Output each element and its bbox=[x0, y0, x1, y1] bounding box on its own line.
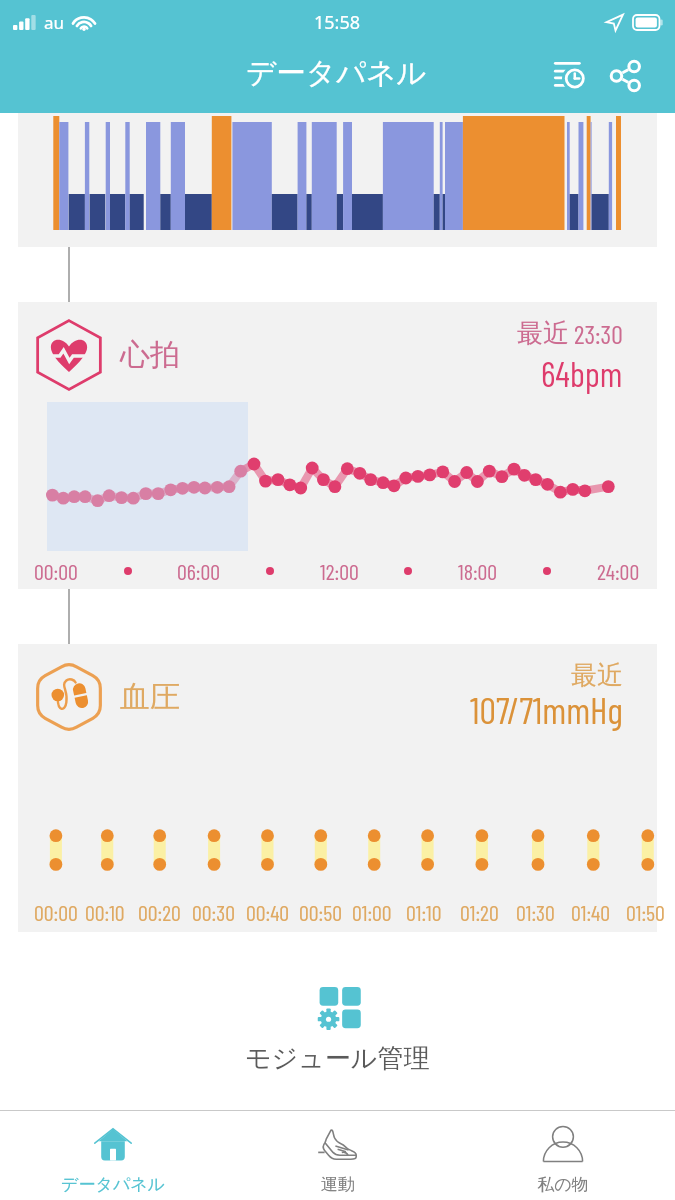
staticText: 01:50 bbox=[626, 899, 665, 925]
staticText: 18:00 bbox=[458, 558, 498, 584]
staticText: 15:58 bbox=[314, 10, 361, 35]
button[interactable] bbox=[18, 113, 657, 247]
staticText: 01:10 bbox=[406, 899, 442, 925]
staticText: 24:00 bbox=[597, 558, 640, 584]
button[interactable]: 運動 bbox=[225, 1111, 450, 1200]
button[interactable]: History bbox=[545, 49, 593, 97]
staticText: 01:20 bbox=[460, 899, 499, 925]
staticText: 運動 bbox=[321, 1174, 355, 1195]
staticText: 23:30 bbox=[574, 318, 623, 349]
staticText: 00:40 bbox=[246, 899, 290, 925]
staticText: 01:00 bbox=[352, 899, 392, 925]
staticText: 01:30 bbox=[516, 899, 555, 925]
button[interactable]: 心拍 bbox=[18, 302, 657, 589]
staticText: au bbox=[44, 11, 65, 34]
staticText: 06:00 bbox=[177, 558, 220, 584]
staticText: 00:10 bbox=[85, 899, 125, 925]
staticText: 12:00 bbox=[320, 558, 359, 584]
staticText: 00:30 bbox=[192, 899, 235, 925]
button[interactable]: データパネル bbox=[0, 1111, 225, 1200]
staticText: 64bpm bbox=[541, 352, 623, 394]
staticText: 血圧 bbox=[120, 678, 180, 716]
button[interactable]: Share bbox=[602, 52, 650, 100]
staticText: 00:20 bbox=[138, 899, 181, 925]
staticText: モジュール管理 bbox=[245, 1042, 430, 1075]
staticText: 最近 bbox=[517, 317, 569, 350]
staticText: 最近 bbox=[571, 659, 623, 692]
staticText: データパネル bbox=[61, 1174, 165, 1195]
button[interactable]: モジュール管理 bbox=[0, 987, 675, 1075]
staticText: 107/71mmHg bbox=[470, 687, 623, 731]
staticText: 00:50 bbox=[299, 899, 342, 925]
staticText: 00:00 bbox=[34, 558, 78, 584]
button[interactable]: 血圧 bbox=[18, 644, 657, 932]
staticText: 私の物 bbox=[537, 1174, 589, 1195]
staticText: 心拍 bbox=[120, 336, 180, 374]
staticText: データパネル bbox=[246, 55, 427, 92]
staticText: 00:00 bbox=[34, 899, 78, 925]
button[interactable]: 私の物 bbox=[450, 1111, 675, 1200]
staticText: 01:40 bbox=[571, 899, 610, 925]
